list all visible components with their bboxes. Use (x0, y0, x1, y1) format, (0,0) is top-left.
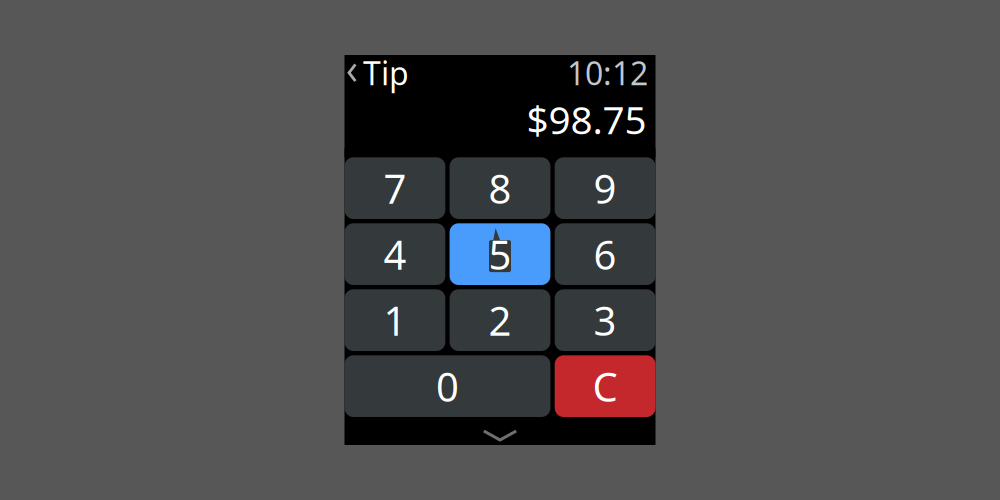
staticText: $98.75 (526, 94, 646, 145)
staticText: 4 (383, 228, 406, 281)
staticText: 7 (383, 162, 406, 215)
staticText: 1 (383, 294, 406, 347)
button[interactable]: 0 (344, 355, 550, 417)
staticText: Tip (363, 51, 409, 94)
staticText: C (593, 360, 618, 413)
button[interactable]: 7 (344, 157, 445, 219)
staticText: 8 (488, 162, 511, 215)
button[interactable]: Back to Tip (344, 55, 409, 90)
button[interactable]: 5 (450, 223, 550, 285)
button[interactable]: Clear (555, 355, 655, 417)
button[interactable]: 2 (450, 289, 550, 351)
staticText: 5 (488, 228, 511, 281)
staticText: 2 (488, 294, 511, 347)
staticText: 9 (594, 162, 617, 215)
staticText: 3 (594, 294, 617, 347)
button[interactable]: 6 (555, 223, 655, 285)
staticText: 6 (594, 228, 617, 281)
button[interactable]: 1 (344, 289, 445, 351)
staticText: 10:12 (567, 51, 648, 94)
staticText: 0 (436, 360, 459, 413)
button[interactable]: 9 (555, 157, 655, 219)
button[interactable]: 8 (450, 157, 550, 219)
button[interactable]: 3 (555, 289, 655, 351)
button[interactable]: 4 (344, 223, 445, 285)
